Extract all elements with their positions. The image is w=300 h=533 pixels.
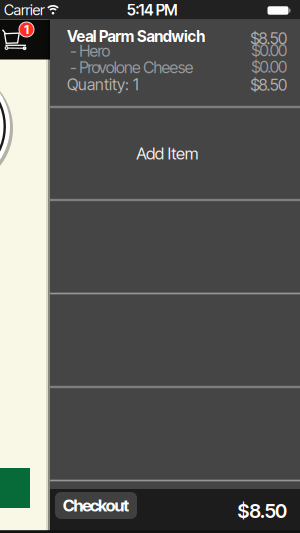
button[interactable]: Cart [0,19,44,59]
button[interactable]: Checkout [55,492,137,519]
staticText: - Hero [67,41,111,61]
staticText: - Provolone Cheese [67,58,194,77]
staticText: Veal Parm Sandwich [67,27,205,46]
staticText: Checkout [63,495,129,516]
staticText: $8.50 [250,29,287,48]
staticText: $0.00 [251,57,287,77]
staticText: $0.00 [251,41,287,60]
staticText: Carrier [4,1,45,19]
staticText: $8.50 [250,75,287,95]
staticText: $8.50 [238,499,287,523]
staticText: 5:14 PM [127,1,177,19]
button[interactable]: Veal Parm Sandwich [50,19,300,107]
button[interactable]: Add Item [50,107,300,200]
staticText: 1 [24,22,29,37]
staticText: Add Item [136,143,199,164]
staticText: Quantity: 1 [67,75,139,94]
